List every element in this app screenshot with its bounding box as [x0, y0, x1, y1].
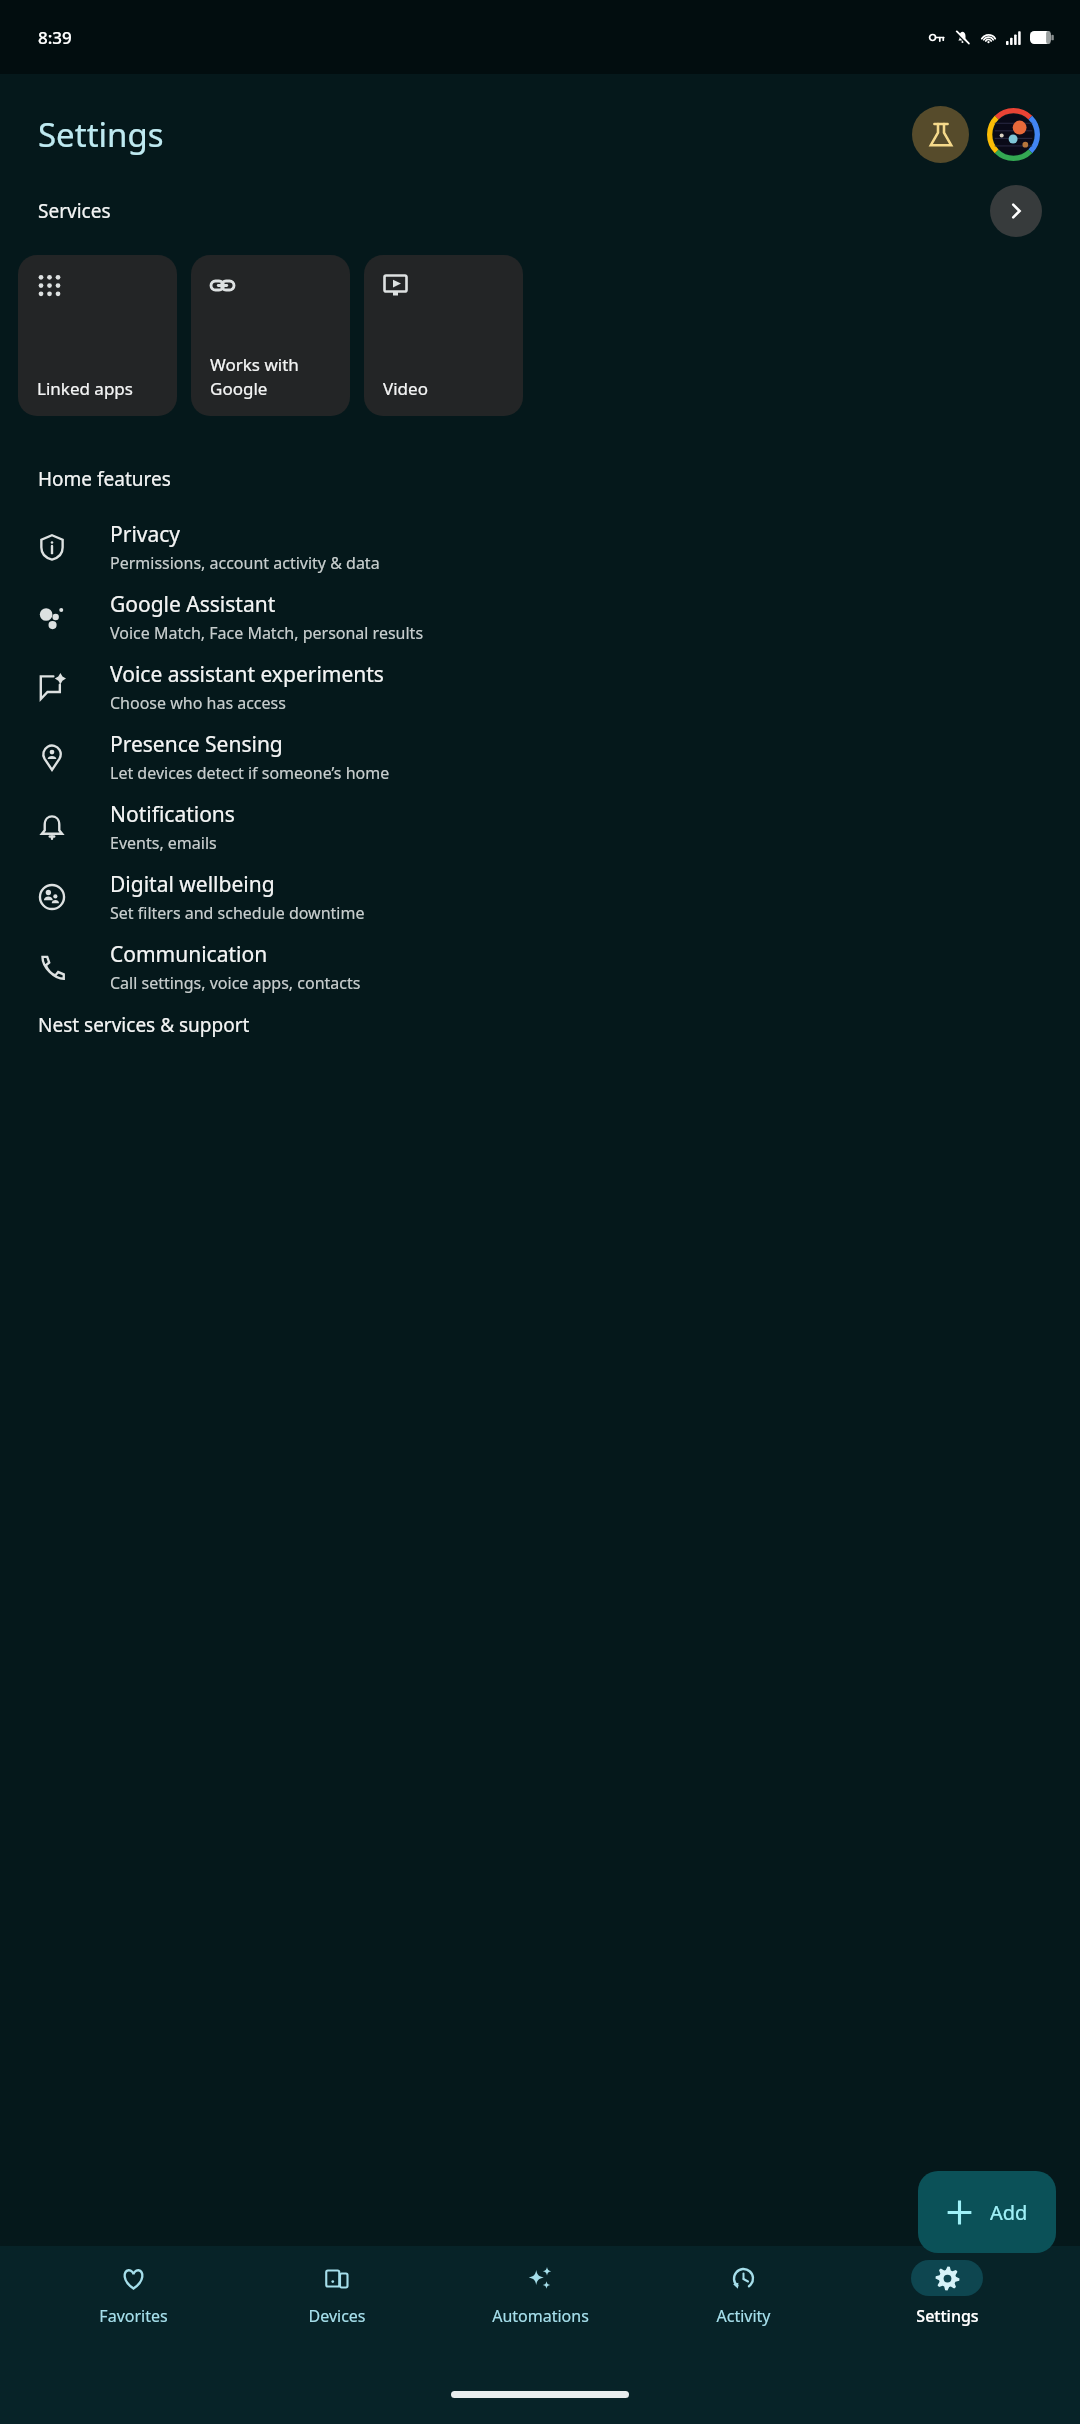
staticText: 8:39	[38, 26, 72, 49]
staticText: Choose who has access	[110, 692, 286, 714]
staticText: Add	[990, 2199, 1028, 2226]
button[interactable]: Add	[918, 2171, 1056, 2253]
button[interactable]: Account	[985, 106, 1042, 163]
staticText: Voice assistant experiments	[110, 660, 384, 689]
staticText: Voice Match, Face Match, personal result…	[110, 622, 424, 644]
button[interactable]: Settings	[877, 2260, 1017, 2327]
button[interactable]: Video	[364, 255, 523, 416]
staticText: Works with Google	[210, 353, 299, 400]
staticText: Linked apps	[37, 377, 133, 400]
button[interactable]: All services	[990, 185, 1042, 237]
button[interactable]: Presence Sensing	[0, 722, 1080, 792]
button[interactable]: Privacy	[0, 512, 1080, 582]
staticText: Communication	[110, 940, 268, 969]
button[interactable]: Activity	[673, 2260, 813, 2327]
button[interactable]: Works with Google	[191, 255, 350, 416]
button[interactable]: Digital wellbeing	[0, 862, 1080, 932]
staticText: Video	[383, 377, 428, 400]
staticText: Set filters and schedule downtime	[110, 902, 365, 924]
staticText: Devices	[308, 2305, 366, 2327]
button[interactable]: Communication	[0, 932, 1080, 1002]
staticText: Home features	[38, 466, 171, 492]
staticText: Permissions, account activity & data	[110, 552, 380, 574]
staticText: Let devices detect if someone’s home	[110, 762, 390, 784]
button[interactable]: Automations	[470, 2260, 610, 2327]
staticText: Settings	[38, 112, 164, 157]
button[interactable]: Experiments	[912, 106, 969, 163]
button[interactable]: Devices	[267, 2260, 407, 2327]
staticText: Services	[38, 198, 111, 224]
button[interactable]: Linked apps	[18, 255, 177, 416]
staticText: Notifications	[110, 800, 235, 829]
staticText: Call settings, voice apps, contacts	[110, 972, 361, 994]
staticText: Nest services & support	[38, 1012, 250, 1038]
staticText: Privacy	[110, 520, 181, 549]
staticText: Settings	[916, 2305, 979, 2327]
staticText: Favorites	[99, 2305, 168, 2327]
staticText: Presence Sensing	[110, 730, 283, 759]
button[interactable]: Favorites	[63, 2260, 203, 2327]
button[interactable]: Google Assistant	[0, 582, 1080, 652]
staticText: Digital wellbeing	[110, 870, 275, 899]
button[interactable]: Notifications	[0, 792, 1080, 862]
button[interactable]: Voice assistant experiments	[0, 652, 1080, 722]
staticText: Automations	[492, 2305, 589, 2327]
staticText: Activity	[716, 2305, 771, 2327]
staticText: Google Assistant	[110, 590, 276, 619]
staticText: Events, emails	[110, 832, 217, 854]
